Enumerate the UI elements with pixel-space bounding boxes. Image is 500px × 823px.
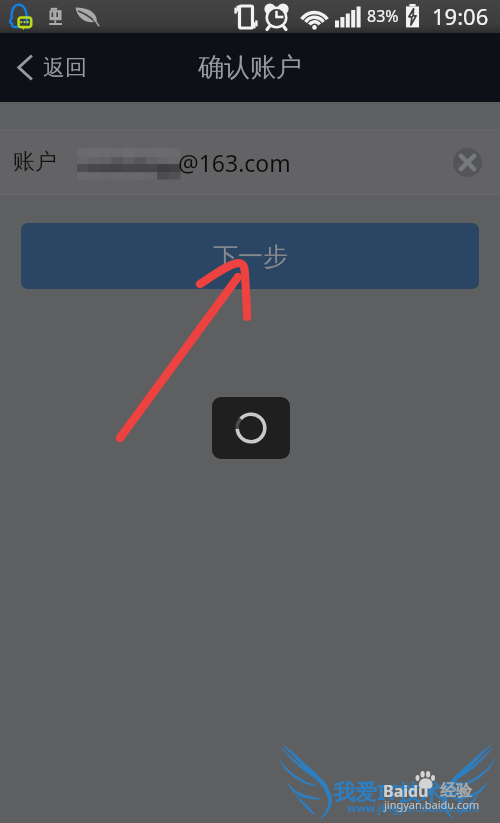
staticText: @163.com [178, 147, 291, 178]
button[interactable]: Clear account [453, 148, 482, 177]
staticText: 83% [367, 5, 399, 27]
staticText: Baidu [383, 780, 429, 802]
button[interactable]: 下一步 [21, 223, 479, 289]
button[interactable]: 账户 [0, 129, 500, 195]
staticText: www.jingyan.baidu.com [347, 800, 479, 815]
staticText: jingyan.baidu.com [384, 797, 480, 812]
staticText: 经验 [440, 781, 472, 801]
staticText: 账户 [13, 148, 57, 176]
staticText: 下一步 [213, 241, 288, 272]
staticText: 返回 [43, 54, 87, 82]
button[interactable]: 返回 [0, 33, 103, 102]
staticText: 19:06 [432, 1, 489, 31]
staticText: 确认账户 [198, 51, 302, 84]
staticText: 我爱IT技术网 [333, 776, 465, 806]
